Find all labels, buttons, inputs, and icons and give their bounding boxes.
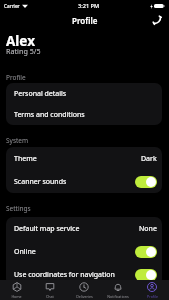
button[interactable]: Home bbox=[0, 280, 33, 300]
staticText: Default map service bbox=[14, 224, 80, 234]
staticText: Profile bbox=[6, 73, 26, 82]
staticText: Chat bbox=[46, 294, 54, 299]
button[interactable]: Call bbox=[150, 13, 164, 27]
staticText: Carrier bbox=[4, 3, 20, 9]
button[interactable]: Default map service bbox=[6, 217, 162, 240]
staticText: Alex bbox=[6, 32, 35, 50]
button[interactable]: Personal details bbox=[6, 83, 162, 104]
staticText: Home bbox=[11, 294, 22, 299]
staticText: Scanner sounds bbox=[14, 177, 67, 187]
button[interactable]: Profile bbox=[135, 280, 169, 300]
staticText: Profile bbox=[72, 15, 98, 26]
staticText: Rating 5/5 bbox=[6, 46, 41, 56]
staticText: Profile bbox=[147, 294, 158, 299]
button[interactable]: Scanner sounds bbox=[6, 170, 162, 193]
staticText: Terms and conditions bbox=[14, 110, 85, 120]
staticText: Theme bbox=[14, 154, 37, 164]
button[interactable]: Use coordinates for navigation bbox=[6, 263, 162, 286]
staticText: Notifications bbox=[107, 294, 129, 299]
staticText: Settings bbox=[6, 204, 31, 213]
staticText: Dark bbox=[141, 154, 157, 164]
button[interactable]: Theme bbox=[6, 147, 162, 170]
staticText: System bbox=[6, 136, 29, 145]
button[interactable]: Chat bbox=[33, 280, 67, 300]
staticText: Deliveries bbox=[76, 294, 93, 299]
staticText: Personal details bbox=[14, 89, 67, 99]
staticText: None bbox=[139, 224, 157, 234]
button[interactable]: Deliveries bbox=[67, 280, 101, 300]
staticText: Use coordinates for navigation bbox=[14, 270, 115, 280]
staticText: Online bbox=[14, 247, 36, 257]
button[interactable]: Online bbox=[6, 240, 162, 263]
button[interactable]: Terms and conditions bbox=[6, 104, 162, 125]
staticText: 3:21 PM bbox=[78, 2, 100, 10]
button[interactable]: Notifications bbox=[101, 280, 135, 300]
